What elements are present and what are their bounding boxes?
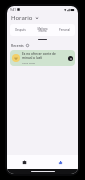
button[interactable]: Es no ofrecer conte de xyxy=(10,50,75,66)
staticText: Mañana entera xyxy=(37,27,48,33)
button[interactable]: Después xyxy=(10,24,31,36)
staticText: Horario xyxy=(11,14,33,22)
button[interactable]: More options xyxy=(68,56,73,61)
button[interactable]: Recents info xyxy=(26,44,29,47)
staticText: Personal xyxy=(59,28,70,32)
staticText: minusl a lueli xyxy=(22,56,43,60)
button[interactable]: Horario xyxy=(11,13,74,22)
button[interactable]: Personal xyxy=(53,24,75,36)
other: Expand xyxy=(35,16,39,20)
staticText: Recents xyxy=(11,43,24,48)
staticText: Después xyxy=(15,28,26,32)
button[interactable]: Mañana entera xyxy=(31,24,53,36)
staticText: como blogs xyxy=(22,61,36,64)
button[interactable]: Schedule xyxy=(42,155,78,169)
staticText: Es no ofrecer conte de xyxy=(22,52,56,56)
staticText: 9:41 xyxy=(10,8,16,12)
button[interactable]: Home xyxy=(7,155,42,169)
